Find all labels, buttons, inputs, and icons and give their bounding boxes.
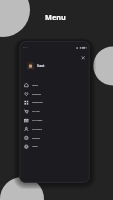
button[interactable]: Guest bbox=[19, 59, 89, 72]
button[interactable]: My Profile bbox=[19, 125, 89, 134]
staticText: My Orders bbox=[32, 119, 43, 122]
staticText: Settings bbox=[32, 137, 40, 140]
button[interactable]: My Orders bbox=[19, 116, 89, 125]
staticText: Login bbox=[32, 145, 38, 148]
staticText: My Cart bbox=[32, 110, 40, 113]
staticText: Favorites bbox=[32, 93, 41, 96]
button[interactable]: Settings bbox=[19, 134, 89, 143]
staticText: My Profile bbox=[32, 128, 42, 131]
button[interactable]: Favorites bbox=[19, 90, 89, 99]
staticText: Guest bbox=[37, 64, 45, 68]
staticText: Home bbox=[32, 84, 38, 87]
staticText: Menu bbox=[45, 12, 66, 22]
staticText: 9:41 bbox=[23, 45, 28, 48]
button[interactable]: Home bbox=[19, 81, 89, 90]
button[interactable]: Login bbox=[19, 142, 89, 151]
staticText: Collections bbox=[32, 101, 43, 104]
button[interactable]: My Cart bbox=[19, 107, 89, 116]
button[interactable]: Close menu bbox=[80, 55, 87, 62]
button[interactable]: Collections bbox=[19, 98, 89, 107]
